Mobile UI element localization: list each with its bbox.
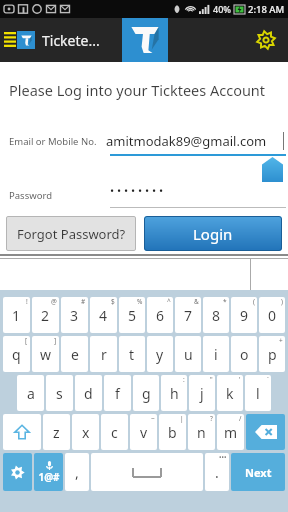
- staticText: #: [81, 297, 86, 306]
- button[interactable]: *: [203, 297, 229, 333]
- button[interactable]: +: [259, 336, 285, 372]
- button[interactable]: Backspace: [246, 414, 285, 450]
- staticText: 6: [156, 306, 165, 325]
- staticText: 3: [70, 306, 79, 325]
- button[interactable]: c: [101, 414, 128, 450]
- staticText: • • • • • • • •: [110, 183, 164, 198]
- staticText: 2: [41, 306, 50, 325]
- staticText: s: [56, 384, 63, 403]
- staticText: y: [156, 345, 164, 364]
- button[interactable]: Space: [91, 453, 203, 491]
- button[interactable]: ]: [32, 336, 59, 372]
- staticText: l: [256, 384, 260, 403]
- button[interactable]: ': [217, 375, 243, 411]
- staticText: d: [84, 384, 93, 403]
- button[interactable]: Next: [231, 453, 285, 491]
- button[interactable]: t: [119, 336, 145, 372]
- button[interactable]: Login: [144, 216, 282, 251]
- staticText: /: [239, 414, 242, 423]
- staticText: `: [267, 375, 269, 384]
- staticText: .: [215, 463, 219, 482]
- staticText: ): [281, 297, 283, 306]
- button[interactable]: #: [61, 297, 88, 333]
- staticText: $: [111, 297, 115, 306]
- staticText: x: [82, 423, 90, 442]
- staticText: ]: [54, 336, 57, 345]
- button[interactable]: $: [90, 297, 117, 333]
- staticText: :: [183, 375, 185, 384]
- button[interactable]: @: [32, 297, 59, 333]
- staticText: Email or Mobile No.: [9, 135, 97, 148]
- staticText: h: [170, 384, 179, 403]
- button[interactable]: f: [104, 375, 131, 411]
- button[interactable]: Shift: [3, 414, 41, 450]
- button[interactable]: (: [231, 297, 257, 333]
- staticText: *: [223, 297, 227, 306]
- button[interactable]: `: [245, 375, 271, 411]
- staticText: Forgot Password?: [17, 225, 126, 243]
- staticText: ~: [151, 414, 155, 423]
- staticText: e: [71, 345, 79, 364]
- button[interactable]: Forgot Password?: [6, 216, 136, 251]
- staticText: b: [168, 423, 177, 442]
- button[interactable]: !: [3, 297, 30, 333]
- button[interactable]: g: [133, 375, 159, 411]
- staticText: m: [224, 423, 238, 442]
- staticText: 40%: [213, 3, 231, 15]
- button[interactable]: ~: [130, 414, 157, 450]
- staticText: ': [239, 375, 241, 384]
- staticText: 8: [212, 306, 221, 325]
- staticText: q: [12, 345, 21, 364]
- staticText: 5: [128, 306, 137, 325]
- button[interactable]: y: [147, 336, 173, 372]
- button[interactable]: a: [17, 375, 44, 411]
- staticText: (: [253, 297, 255, 306]
- button[interactable]: s: [46, 375, 73, 411]
- staticText: 1: [12, 306, 21, 325]
- button[interactable]: ): [259, 297, 285, 333]
- button[interactable]: •••: [205, 453, 229, 491]
- button[interactable]: o: [231, 336, 257, 372]
- button[interactable]: i: [203, 336, 229, 372]
- staticText: Password: [9, 189, 52, 202]
- button[interactable]: ^: [147, 297, 173, 333]
- staticText: k: [226, 384, 234, 403]
- button[interactable]: [: [3, 336, 30, 372]
- staticText: w: [40, 345, 52, 364]
- button[interactable]: ,: [65, 453, 89, 491]
- button[interactable]: d: [75, 375, 102, 411]
- button[interactable]: |: [159, 414, 186, 450]
- staticText: i: [214, 345, 218, 364]
- button[interactable]: u: [175, 336, 201, 372]
- button[interactable]: Settings: [254, 28, 278, 52]
- button[interactable]: Keyboard settings: [3, 453, 32, 491]
- staticText: n: [197, 423, 206, 442]
- button[interactable]: amitmodak89@gmail.com: [110, 126, 286, 156]
- button[interactable]: z: [43, 414, 70, 450]
- button[interactable]: :: [161, 375, 187, 411]
- staticText: Login: [193, 224, 233, 244]
- button[interactable]: &: [175, 297, 201, 333]
- staticText: c: [111, 423, 118, 442]
- staticText: |: [180, 414, 184, 423]
- button[interactable]: ": [189, 375, 215, 411]
- button[interactable]: /: [217, 414, 244, 450]
- staticText: j: [200, 384, 204, 403]
- button[interactable]: r: [90, 336, 117, 372]
- staticText: •••: [219, 453, 227, 462]
- staticText: %: [137, 297, 143, 306]
- staticText: u: [184, 345, 193, 364]
- button[interactable]: x: [72, 414, 99, 450]
- staticText: Next: [245, 465, 272, 480]
- button[interactable]: 1@#: [34, 453, 63, 491]
- button[interactable]: ?: [188, 414, 215, 450]
- staticText: [: [25, 336, 28, 345]
- staticText: @: [51, 297, 57, 306]
- staticText: Tickete...: [42, 31, 100, 50]
- button[interactable]: e: [61, 336, 88, 372]
- button[interactable]: Menu: [4, 32, 16, 48]
- button[interactable]: %: [119, 297, 145, 333]
- staticText: f: [115, 384, 120, 403]
- staticText: !: [26, 297, 28, 306]
- button[interactable]: • • • • • • • •: [110, 182, 286, 208]
